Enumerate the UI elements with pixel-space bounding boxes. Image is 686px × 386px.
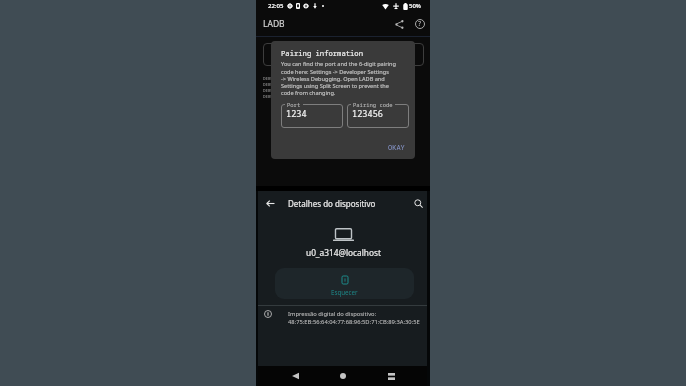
staticText: ? [418,19,422,29]
staticText: DEBUG: adb output line 3 [263,94,326,100]
staticText: Port [287,101,301,108]
button[interactable]: Esquecer [275,268,414,299]
button[interactable]: Home [334,367,352,385]
staticText: u0_a314@localhost [306,247,381,258]
staticText: OKAY [388,143,405,153]
staticText: 22:05 [268,2,284,10]
button[interactable]: Recents [382,367,400,385]
staticText: Detalhes do dispositivo [288,198,376,209]
staticText: DEBUG: adb output line 2 [263,88,326,94]
staticText: Pairing information [281,48,363,58]
staticText: LADB [263,18,285,30]
button[interactable]: Search [410,195,426,211]
staticText: You can find the port and the 6-digit pa… [281,60,396,97]
staticText: 123456 [352,108,383,120]
staticText: DEBUG: adb output line 1 [263,82,326,88]
staticText: DEBUG: adb output line 0 [263,76,326,82]
button[interactable]: Share [391,16,407,32]
button[interactable]: Back [286,367,304,385]
staticText: Impressão digital do dispositivo: 48:75:… [288,310,420,325]
staticText: 50% [409,2,421,10]
button[interactable]: Back [262,195,278,211]
button[interactable]: Help [412,16,428,32]
staticText: Pairing code [353,101,393,108]
button[interactable]: OKAY [384,141,409,155]
staticText: Esquecer [331,288,358,296]
staticText: 1234 [286,108,307,120]
